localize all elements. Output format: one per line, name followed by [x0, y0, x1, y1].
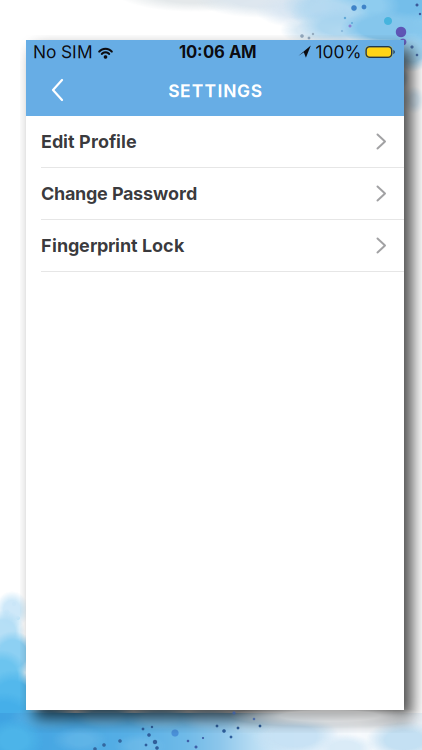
- button[interactable]: Edit Profile: [26, 116, 404, 168]
- staticText: 100%: [315, 41, 361, 62]
- button[interactable]: Back: [26, 69, 77, 111]
- staticText: N: [223, 80, 236, 101]
- staticText: G: [237, 80, 250, 101]
- staticText: Edit Profile: [41, 131, 137, 152]
- staticText: Change Password: [41, 183, 197, 204]
- staticText: S: [168, 80, 179, 101]
- staticText: Fingerprint Lock: [41, 235, 184, 256]
- staticText: S: [251, 80, 262, 101]
- staticText: No SIM: [33, 41, 93, 62]
- staticText: I: [217, 80, 222, 101]
- staticText: T: [205, 80, 217, 101]
- staticText: T: [192, 80, 204, 101]
- button[interactable]: Fingerprint Lock: [26, 220, 404, 272]
- staticText: E: [180, 80, 191, 101]
- staticText: 10:06 AM: [179, 42, 257, 62]
- button[interactable]: Change Password: [26, 168, 404, 220]
